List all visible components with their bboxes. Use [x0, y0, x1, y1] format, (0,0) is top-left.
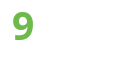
- staticText: 9: [12, 0, 35, 51]
